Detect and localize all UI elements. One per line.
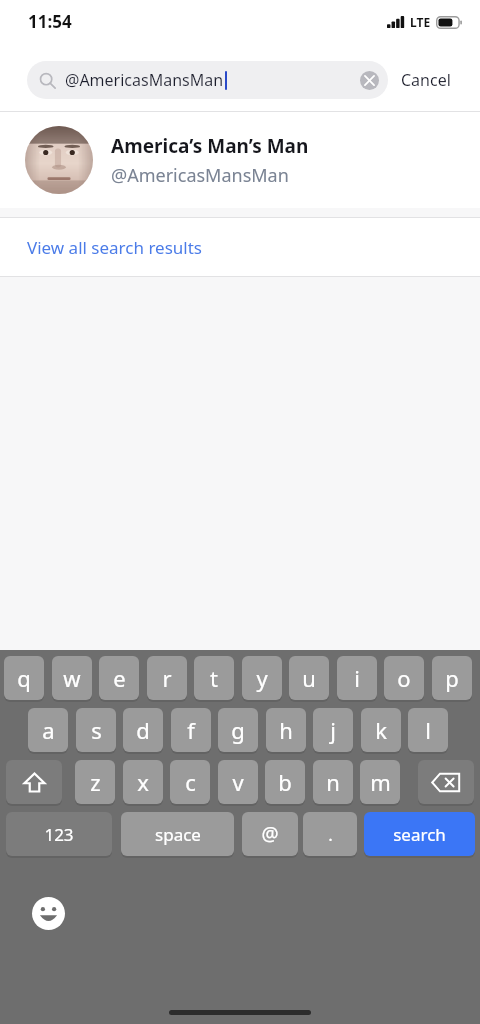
button[interactable]: Cancel bbox=[388, 62, 464, 98]
button[interactable]: . bbox=[303, 812, 357, 856]
button[interactable]: c bbox=[170, 760, 210, 804]
button[interactable]: Shift bbox=[6, 760, 62, 804]
button[interactable]: d bbox=[123, 708, 163, 752]
staticText: y bbox=[256, 663, 268, 693]
staticText: u bbox=[302, 663, 316, 693]
staticText: Cancel bbox=[401, 69, 451, 91]
button[interactable]: f bbox=[171, 708, 211, 752]
staticText: @AmericasMansMan bbox=[65, 69, 224, 91]
button[interactable]: Clear text bbox=[360, 71, 379, 90]
staticText: s bbox=[91, 715, 102, 745]
button[interactable]: i bbox=[337, 656, 377, 700]
staticText: America’s Man’s Man bbox=[111, 133, 309, 159]
button[interactable]: q bbox=[4, 656, 44, 700]
staticText: LTE bbox=[410, 14, 431, 30]
button[interactable]: y bbox=[242, 656, 282, 700]
staticText: v bbox=[232, 767, 244, 797]
staticText: . bbox=[328, 823, 333, 846]
staticText: h bbox=[279, 715, 293, 745]
staticText: f bbox=[187, 715, 195, 745]
button[interactable]: t bbox=[194, 656, 234, 700]
button[interactable]: s bbox=[76, 708, 116, 752]
staticText: w bbox=[63, 663, 81, 693]
button[interactable]: o bbox=[384, 656, 424, 700]
button[interactable]: Emoji keyboard bbox=[32, 897, 65, 930]
button[interactable]: b bbox=[265, 760, 305, 804]
button[interactable]: u bbox=[289, 656, 329, 700]
button[interactable]: k bbox=[361, 708, 401, 752]
staticText: p bbox=[445, 663, 459, 693]
button[interactable]: n bbox=[313, 760, 353, 804]
staticText: k bbox=[375, 715, 387, 745]
staticText: g bbox=[231, 715, 245, 745]
button[interactable]: 123 bbox=[6, 812, 112, 856]
staticText: m bbox=[370, 767, 391, 797]
staticText: c bbox=[185, 767, 196, 797]
staticText: e bbox=[113, 663, 126, 693]
button[interactable]: p bbox=[432, 656, 472, 700]
staticText: @AmericasMansMan bbox=[111, 163, 289, 188]
button[interactable]: Backspace bbox=[418, 760, 474, 804]
staticText: x bbox=[137, 767, 149, 797]
staticText: j bbox=[330, 715, 336, 745]
staticText: d bbox=[136, 715, 150, 745]
staticText: View all search results bbox=[27, 236, 202, 259]
button[interactable]: m bbox=[360, 760, 400, 804]
button[interactable]: z bbox=[75, 760, 115, 804]
staticText: 11:54 bbox=[28, 10, 72, 33]
button[interactable]: @ bbox=[242, 812, 298, 856]
staticText: b bbox=[278, 767, 292, 797]
button[interactable]: j bbox=[313, 708, 353, 752]
staticText: t bbox=[210, 663, 218, 693]
button[interactable]: a bbox=[28, 708, 68, 752]
staticText: @ bbox=[261, 821, 279, 847]
staticText: space bbox=[155, 823, 201, 846]
staticText: q bbox=[17, 663, 31, 693]
button[interactable]: e bbox=[99, 656, 139, 700]
button[interactable]: g bbox=[218, 708, 258, 752]
button[interactable]: America’s Man’s Man bbox=[0, 112, 480, 208]
staticText: o bbox=[397, 663, 411, 693]
staticText: a bbox=[42, 715, 55, 745]
button[interactable]: r bbox=[147, 656, 187, 700]
staticText: i bbox=[354, 663, 360, 693]
staticText: l bbox=[425, 715, 431, 745]
button[interactable]: l bbox=[408, 708, 448, 752]
button[interactable]: View all search results bbox=[0, 218, 480, 276]
button[interactable]: space bbox=[121, 812, 234, 856]
button[interactable]: x bbox=[123, 760, 163, 804]
button[interactable]: v bbox=[218, 760, 258, 804]
button[interactable]: h bbox=[266, 708, 306, 752]
button[interactable]: @AmericasMansMan bbox=[27, 61, 388, 99]
staticText: 123 bbox=[44, 823, 74, 846]
button[interactable]: search bbox=[364, 812, 475, 856]
staticText: n bbox=[326, 767, 340, 797]
button[interactable]: w bbox=[52, 656, 92, 700]
staticText: r bbox=[162, 663, 172, 693]
staticText: z bbox=[90, 767, 101, 797]
staticText: search bbox=[393, 823, 446, 846]
